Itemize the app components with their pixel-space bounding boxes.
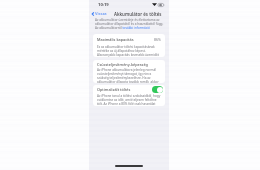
staticText: Akkumulátor és töltés — [114, 11, 162, 17]
staticText: 86% — [154, 37, 161, 42]
button[interactable]: Optimalizált töltés — [97, 86, 163, 93]
staticText: Az iPhone tanul a töltési szokásaidból, … — [97, 94, 161, 106]
button[interactable]: Vissza — [89, 9, 109, 18]
staticText: 10:19 — [98, 2, 109, 8]
button[interactable]: Optimalizált töltés kapcsoló — [152, 86, 163, 93]
staticText: Vissza — [95, 11, 107, 16]
staticText: Az akkumulátor üzemideje és élettartama … — [95, 18, 164, 30]
staticText: Az iPhone akkumulátora jelenleg normál c… — [97, 68, 161, 83]
staticText: Optimalizált töltés — [97, 87, 131, 92]
staticText: Ez az akkumulátor töltési kapacitásának … — [97, 45, 161, 57]
staticText: Maximális kapacitás — [97, 37, 134, 42]
button[interactable]: Maximális kapacitás — [97, 37, 161, 42]
staticText: Csúcsteljesítmény-képesség — [97, 62, 148, 67]
button[interactable]: Csúcsteljesítmény-képesség — [93, 60, 165, 83]
